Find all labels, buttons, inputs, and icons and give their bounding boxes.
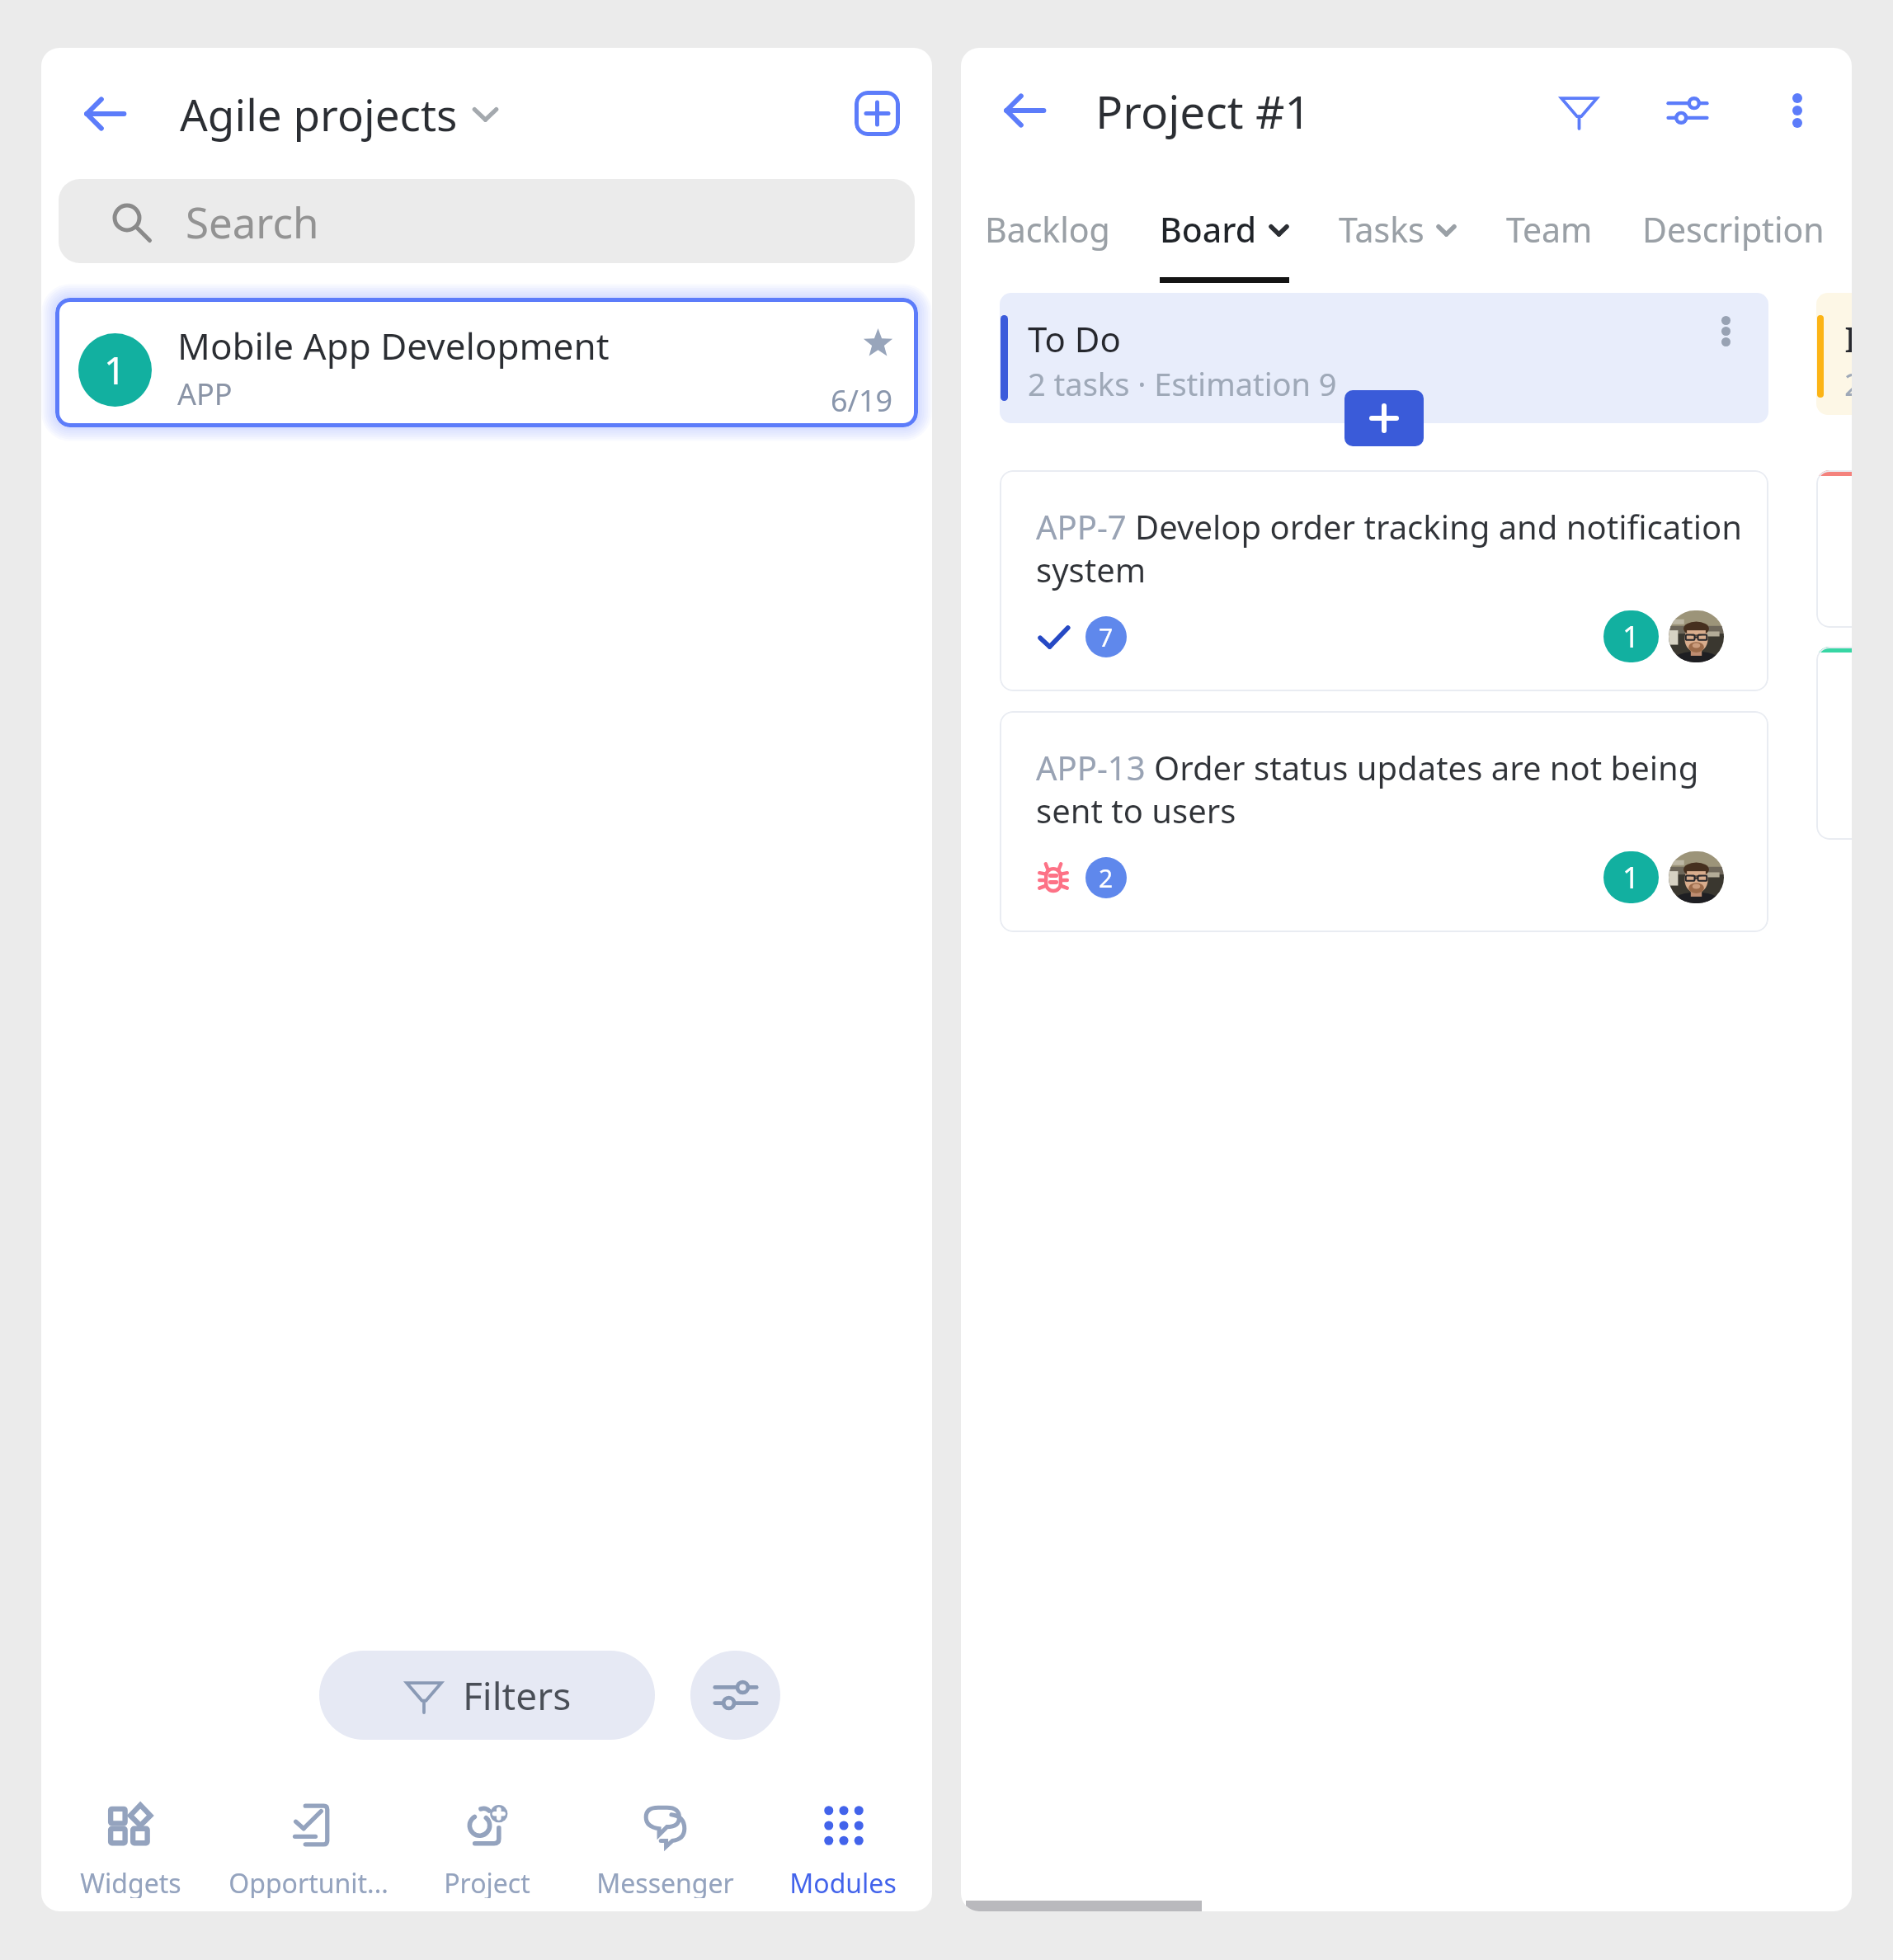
button[interactable]: Board: [1135, 206, 1314, 283]
staticText: Messenger: [596, 1865, 734, 1898]
button[interactable]: Settings: [1657, 80, 1718, 141]
staticText: 2 tasks · Estimation 9: [1028, 362, 1337, 405]
button[interactable]: APP-13 Order status updates are not bein…: [1000, 711, 1768, 932]
staticText: 6/19: [831, 380, 893, 421]
staticText: Search: [186, 193, 319, 250]
staticText: APP-13 Order status updates are not bein…: [1036, 745, 1752, 833]
button[interactable]: Widgets: [41, 1803, 219, 1898]
staticText: To Do: [1028, 315, 1121, 362]
staticText: Board: [1160, 206, 1257, 252]
staticText: Project #1: [1095, 80, 1311, 142]
button[interactable]: Sort settings: [690, 1651, 780, 1740]
button[interactable]: Opportunit...: [219, 1803, 398, 1898]
staticText: Backlog: [985, 206, 1110, 252]
staticText: APP-7 Develop order tracking and notific…: [1036, 504, 1752, 592]
button[interactable]: Back: [78, 87, 132, 141]
button[interactable]: Messenger: [576, 1803, 754, 1898]
staticText: Description: [1642, 206, 1825, 252]
staticText: Tasks: [1339, 206, 1424, 252]
button[interactable]: In Progress: [1816, 293, 1852, 415]
staticText: Agile projects: [180, 84, 458, 144]
button[interactable]: More options: [1773, 86, 1822, 135]
button[interactable]: Team: [1481, 206, 1618, 283]
button[interactable]: Add project: [855, 91, 900, 136]
staticText: APP: [177, 374, 233, 414]
staticText: 1: [104, 344, 126, 396]
button[interactable]: APP-7 Develop order tracking and notific…: [1000, 470, 1768, 691]
staticText: 1: [1622, 616, 1640, 657]
staticText: 2: [1099, 861, 1114, 895]
button[interactable]: 1: [55, 298, 918, 427]
staticText: 7: [1099, 620, 1114, 654]
staticText: Filters: [463, 1670, 572, 1722]
staticText: In Progress: [1844, 315, 1852, 362]
staticText: 1: [1622, 857, 1640, 898]
button[interactable]: Backlog: [961, 206, 1135, 283]
staticText: Opportunit...: [228, 1865, 388, 1898]
button[interactable]: Back: [997, 83, 1052, 138]
button[interactable]: Project: [398, 1803, 576, 1898]
button[interactable]: Description: [1618, 206, 1849, 283]
staticText: Widgets: [80, 1865, 181, 1898]
staticText: Modules: [789, 1865, 897, 1898]
button[interactable]: Column options: [1706, 311, 1745, 351]
button[interactable]: Search: [59, 179, 915, 263]
button[interactable]: Filter: [1548, 80, 1609, 141]
button[interactable]: Modules: [754, 1803, 932, 1898]
button[interactable]: Filters: [319, 1651, 655, 1740]
staticText: 2 tasks · Estimation 6: [1844, 362, 1852, 405]
staticText: Team: [1506, 206, 1593, 252]
staticText: Mobile App Development: [177, 321, 610, 370]
button[interactable]: [1816, 470, 1852, 628]
button[interactable]: Tasks: [1314, 206, 1481, 283]
button[interactable]: To Do: [1000, 293, 1768, 423]
button[interactable]: Add task: [1344, 390, 1424, 446]
button[interactable]: [1816, 647, 1852, 840]
staticText: Project: [444, 1865, 530, 1898]
